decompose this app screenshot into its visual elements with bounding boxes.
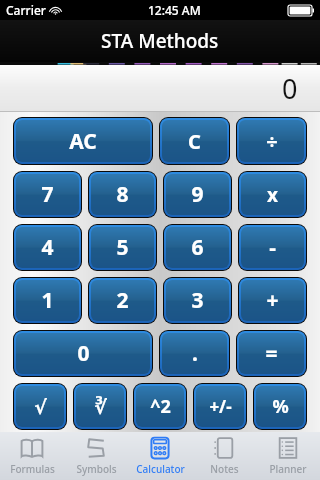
button[interactable]: 4: [16, 227, 79, 268]
button[interactable]: 0: [16, 333, 150, 374]
button[interactable]: 1: [16, 280, 79, 321]
button[interactable]: Notes: [192, 432, 256, 480]
button[interactable]: 8: [91, 174, 154, 215]
staticText: 3: [191, 286, 204, 315]
button[interactable]: %: [256, 386, 304, 427]
button[interactable]: =: [239, 333, 304, 374]
button[interactable]: ∛: [76, 386, 124, 427]
staticText: Planner: [269, 462, 307, 476]
button[interactable]: .: [162, 333, 227, 374]
button[interactable]: ÷: [239, 120, 304, 162]
staticText: Calculator: [136, 462, 185, 476]
button[interactable]: Planner: [256, 432, 320, 480]
staticText: 0: [282, 70, 298, 107]
staticText: 6: [191, 233, 204, 262]
button[interactable]: 7: [16, 174, 79, 215]
button[interactable]: x: [241, 174, 304, 215]
button[interactable]: Calculator: [128, 432, 192, 480]
button[interactable]: AC: [16, 120, 150, 162]
staticText: 9: [191, 180, 204, 209]
staticText: 4: [41, 233, 54, 262]
staticText: 12:45 AM: [148, 2, 201, 18]
button[interactable]: +/-: [196, 386, 244, 427]
button[interactable]: Formulas: [0, 432, 64, 480]
staticText: Formulas: [10, 462, 55, 476]
button[interactable]: Symbols: [64, 432, 128, 480]
button[interactable]: √: [16, 386, 64, 427]
staticText: +/-: [209, 395, 232, 418]
staticText: x: [267, 182, 278, 208]
staticText: %: [272, 394, 289, 419]
staticText: 2: [116, 286, 129, 315]
staticText: 8: [116, 180, 129, 209]
staticText: 7: [41, 180, 54, 209]
staticText: 5: [116, 233, 129, 262]
staticText: ÷: [266, 128, 278, 155]
staticText: +: [266, 286, 279, 315]
button[interactable]: 5: [91, 227, 154, 268]
button[interactable]: ^2: [136, 386, 184, 427]
staticText: ∛: [94, 396, 107, 418]
button[interactable]: -: [241, 227, 304, 268]
staticText: Symbols: [76, 462, 117, 476]
staticText: =: [265, 339, 278, 368]
button[interactable]: 2: [91, 280, 154, 321]
button[interactable]: 6: [166, 227, 229, 268]
staticText: STA Methods: [101, 28, 219, 54]
staticText: 0: [77, 339, 90, 368]
staticText: Carrier: [6, 2, 46, 18]
button[interactable]: 9: [166, 174, 229, 215]
button[interactable]: 3: [166, 280, 229, 321]
staticText: -: [269, 233, 276, 262]
staticText: AC: [69, 127, 97, 156]
button[interactable]: +: [241, 280, 304, 321]
staticText: Notes: [210, 462, 239, 476]
staticText: 1: [41, 286, 54, 315]
staticText: .: [192, 339, 198, 368]
staticText: ^2: [150, 394, 171, 419]
button[interactable]: C: [162, 120, 227, 162]
staticText: √: [34, 396, 47, 418]
staticText: C: [188, 128, 201, 155]
